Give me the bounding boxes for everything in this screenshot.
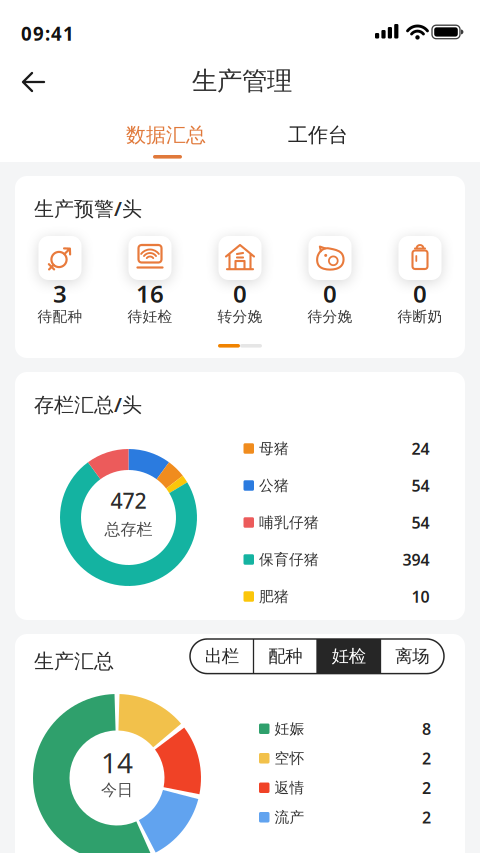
staticText: 待分娩	[307, 307, 352, 325]
staticText: 母猪	[259, 439, 289, 457]
staticText: 保育仔猪	[259, 550, 319, 568]
staticText: 394	[402, 549, 429, 570]
button[interactable]: 16	[105, 236, 195, 326]
staticText: 3	[53, 278, 67, 309]
staticText: 54	[411, 475, 429, 496]
staticText: 2	[422, 807, 431, 828]
staticText: 存栏汇总/头	[34, 391, 142, 418]
button[interactable]: 3	[15, 236, 105, 326]
staticText: 8	[422, 718, 431, 739]
staticText: 生产汇总	[34, 649, 114, 674]
staticText: 待断奶	[397, 307, 442, 325]
staticText: 妊娠	[274, 720, 304, 738]
staticText: 配种	[268, 646, 302, 667]
button[interactable]: 0	[195, 236, 285, 326]
button[interactable]: 0	[375, 236, 465, 326]
staticText: 妊检	[332, 646, 366, 667]
staticText: 哺乳仔猪	[259, 513, 319, 531]
staticText: 0	[413, 278, 427, 309]
button[interactable]: 妊检	[317, 639, 380, 674]
button[interactable]: 离场	[380, 639, 444, 674]
staticText: 空怀	[274, 749, 304, 767]
staticText: 54	[411, 512, 429, 533]
staticText: 转分娩	[217, 307, 262, 325]
staticText: 生产预警/头	[34, 195, 142, 222]
staticText: 2	[422, 777, 431, 798]
button[interactable]: 数据汇总	[86, 113, 246, 157]
staticText: 09:41	[21, 21, 74, 46]
button[interactable]: 工作台	[248, 113, 388, 157]
staticText: 0	[233, 278, 247, 309]
staticText: 返情	[274, 779, 304, 797]
staticText: 离场	[395, 646, 429, 667]
staticText: 2	[422, 748, 431, 769]
staticText: 14	[101, 744, 133, 781]
staticText: 数据汇总	[126, 123, 206, 147]
staticText: 472	[110, 486, 146, 515]
staticText: 24	[411, 438, 429, 459]
staticText: 肥猪	[259, 587, 289, 605]
staticText: 工作台	[288, 123, 348, 147]
button[interactable]: Back	[20, 71, 47, 93]
staticText: 0	[323, 278, 337, 309]
staticText: 流产	[274, 808, 304, 826]
staticText: 待妊检	[127, 307, 172, 325]
staticText: 待配种	[37, 307, 82, 325]
staticText: 10	[411, 586, 429, 607]
staticText: 公猪	[259, 476, 289, 494]
staticText: 生产管理	[192, 65, 292, 96]
button[interactable]: 出栏	[190, 639, 253, 674]
staticText: 今日	[101, 780, 133, 800]
staticText: 总存栏	[104, 520, 152, 539]
staticText: 16	[136, 278, 164, 309]
button[interactable]: 0	[285, 236, 375, 326]
staticText: 出栏	[205, 646, 239, 667]
button[interactable]: 配种	[253, 639, 317, 674]
